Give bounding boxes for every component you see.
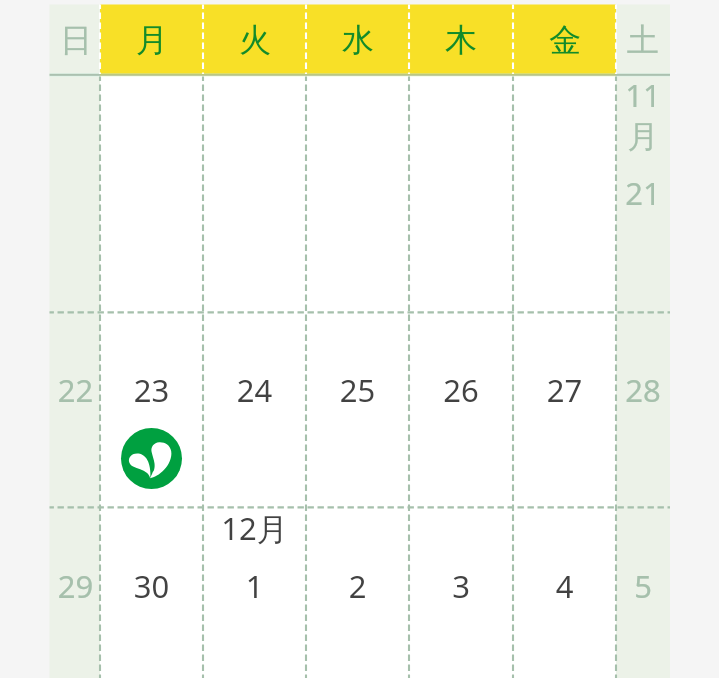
staticText: 24: [203, 369, 306, 411]
staticText: 月: [136, 20, 168, 60]
button[interactable]: 水: [306, 5, 409, 75]
staticText: 2: [306, 565, 409, 607]
staticText: 21: [616, 172, 670, 214]
staticText: 水: [342, 20, 374, 60]
button[interactable]: 土: [616, 5, 670, 75]
button[interactable]: 22: [50, 311, 101, 507]
button[interactable]: 25: [306, 311, 409, 507]
staticText: 26: [409, 369, 513, 411]
button[interactable]: 5: [616, 507, 670, 678]
button[interactable]: 金: [513, 5, 616, 75]
button[interactable]: 28: [616, 311, 670, 507]
button[interactable]: 24: [203, 311, 306, 507]
button[interactable]: 12月: [203, 507, 306, 678]
button[interactable]: 火: [203, 5, 306, 75]
staticText: 27: [513, 369, 616, 411]
button[interactable]: 26: [409, 311, 513, 507]
staticText: 金: [549, 20, 581, 60]
staticText: 22: [50, 369, 101, 411]
staticText: 4: [513, 565, 616, 607]
staticText: 火: [239, 20, 271, 60]
staticText: 3: [409, 565, 513, 607]
staticText: 29: [50, 565, 101, 607]
button[interactable]: 木: [409, 5, 513, 75]
staticText: 土: [627, 20, 659, 60]
button[interactable]: 月: [100, 5, 203, 75]
staticText: 25: [306, 369, 409, 411]
button[interactable]: 4: [513, 507, 616, 678]
staticText: 30: [100, 565, 203, 607]
staticText: 日: [60, 20, 92, 60]
button[interactable]: 29: [50, 507, 101, 678]
button[interactable]: 30: [100, 507, 203, 678]
staticText: 1: [203, 565, 306, 607]
button[interactable]: 11月: [616, 74, 670, 311]
staticText: 12月: [203, 507, 306, 549]
staticText: 23: [100, 369, 203, 411]
staticText: 11月: [616, 74, 670, 156]
button[interactable]: 3: [409, 507, 513, 678]
button[interactable]: 日: [50, 5, 101, 75]
other: Meal record: [121, 428, 182, 489]
button[interactable]: 23: [100, 311, 203, 507]
button[interactable]: 2: [306, 507, 409, 678]
staticText: 28: [616, 369, 670, 411]
button[interactable]: 27: [513, 311, 616, 507]
staticText: 5: [616, 565, 670, 607]
staticText: 木: [445, 20, 477, 60]
